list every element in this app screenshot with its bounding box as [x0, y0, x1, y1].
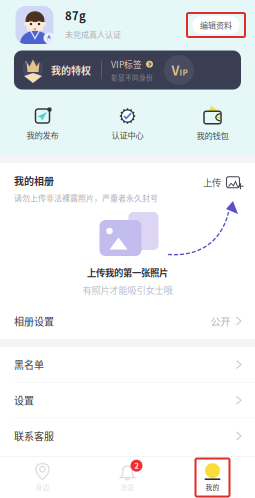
staticText: 未完成真人认证: [65, 28, 121, 40]
staticText: 彰显不同身份: [111, 72, 153, 82]
staticText: 2: [134, 460, 138, 471]
button[interactable]: 相册设置: [0, 303, 255, 338]
staticText: 身边: [35, 482, 49, 492]
button[interactable]: 设置: [0, 383, 255, 418]
staticText: 我的钱包: [196, 129, 228, 141]
staticText: 上传我的第一张照片: [87, 265, 168, 279]
button[interactable]: 认证中心: [85, 108, 170, 141]
button[interactable]: 联系客服: [0, 418, 255, 453]
button[interactable]: 上传: [203, 175, 241, 189]
staticText: VIP标签: [111, 58, 142, 70]
button[interactable]: 黑名单: [0, 347, 255, 383]
staticText: 公开: [210, 314, 230, 328]
staticText: 消息: [120, 482, 134, 492]
button[interactable]: 编辑资料: [192, 16, 239, 34]
button[interactable]: 我的发布: [0, 108, 85, 141]
staticText: 请勿上传非法裸露照片，严重者永久封号: [14, 192, 158, 203]
staticText: 编辑资料: [200, 19, 232, 31]
staticText: 认证中心: [111, 129, 143, 141]
staticText: V: [171, 61, 179, 79]
staticText: IP: [179, 66, 187, 78]
staticText: 上传: [203, 175, 221, 189]
button[interactable]: 身边: [0, 463, 85, 492]
staticText: 黑名单: [14, 357, 44, 372]
staticText: 我的: [205, 482, 219, 492]
staticText: 相册设置: [14, 314, 54, 328]
button[interactable]: 我的特权: [14, 50, 241, 89]
button[interactable]: 2: [85, 463, 170, 492]
staticText: 有照片才能吸引女士哦: [82, 283, 172, 296]
staticText: 我的特权: [51, 63, 91, 77]
staticText: 87g: [65, 7, 86, 23]
button[interactable]: 我的: [170, 458, 255, 496]
button[interactable]: 我的钱包: [170, 107, 255, 141]
staticText: 我的相册: [14, 173, 54, 188]
staticText: 我的发布: [26, 129, 58, 141]
staticText: 设置: [14, 393, 34, 407]
staticText: 联系客服: [14, 429, 54, 443]
